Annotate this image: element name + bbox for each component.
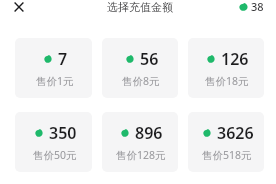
staticText: 3626 [217,122,254,144]
staticText: 选择充值金额 [107,0,173,14]
button[interactable]: 56 [102,38,178,98]
staticText: 售价18元 [205,74,249,88]
staticText: 售价50元 [33,148,77,162]
button[interactable]: 7 [15,38,92,98]
button[interactable]: Close [9,0,29,14]
staticText: 售价128元 [116,148,166,162]
staticText: 售价8元 [122,74,160,88]
button[interactable]: 3626 [188,112,264,172]
button[interactable]: 126 [188,38,264,98]
staticText: 896 [135,122,163,144]
button[interactable]: 896 [102,112,178,172]
staticText: 7 [58,48,68,70]
staticText: 56 [140,48,159,70]
staticText: 售价518元 [202,148,252,162]
button[interactable]: 38 [239,0,264,13]
staticText: 38 [251,0,264,13]
staticText: 126 [221,48,249,70]
button[interactable]: 350 [15,112,92,172]
staticText: 350 [49,122,77,144]
staticText: 售价1元 [36,74,74,88]
